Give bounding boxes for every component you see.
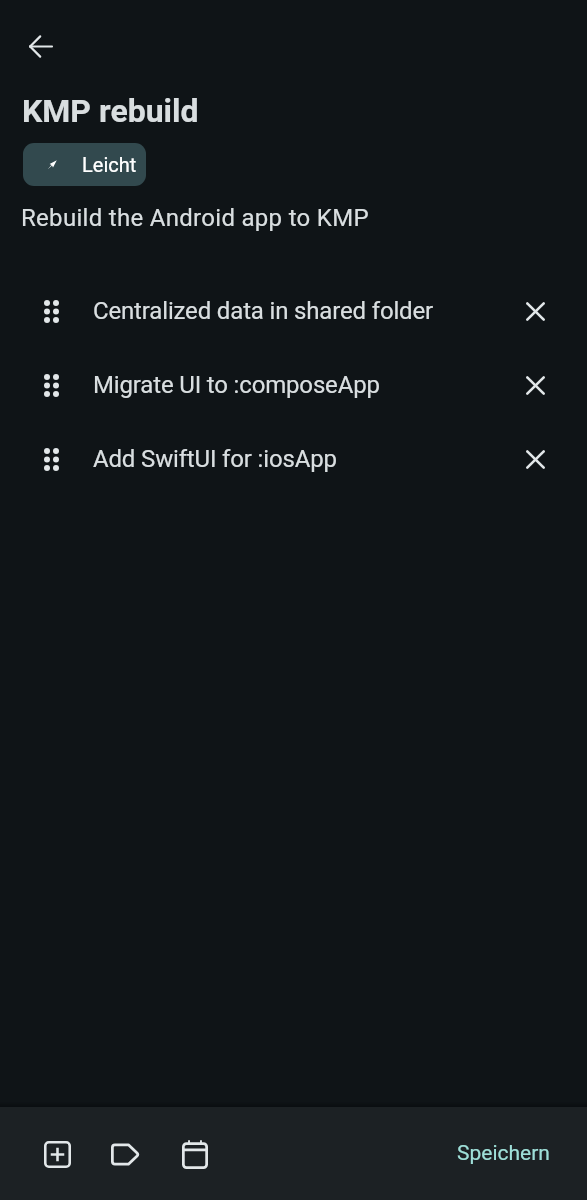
staticText: KMP rebuild [22,92,199,130]
button[interactable]: Add subtask [34,1131,80,1177]
staticText: Add SwiftUI for :iosApp [93,445,337,473]
staticText: Centralized data in shared folder [93,297,434,325]
button[interactable]: Remove [514,438,556,480]
staticText: Leicht [82,153,137,176]
button[interactable]: Add tag [102,1131,148,1177]
button[interactable]: Remove [514,364,556,406]
button[interactable]: Set date [172,1131,218,1177]
button[interactable]: Centralized data in shared folder [0,288,587,334]
staticText: Rebuild the Android app to KMP [21,204,369,232]
staticText: Migrate UI to :composeApp [93,371,380,399]
button[interactable]: Leicht [23,143,146,186]
button[interactable]: Migrate UI to :composeApp [0,362,587,408]
button[interactable]: Back [16,22,64,70]
staticText: Speichern [457,1141,550,1166]
button[interactable]: Speichern [443,1131,564,1176]
button[interactable]: Remove [514,290,556,332]
button[interactable]: Add SwiftUI for :iosApp [0,436,587,482]
